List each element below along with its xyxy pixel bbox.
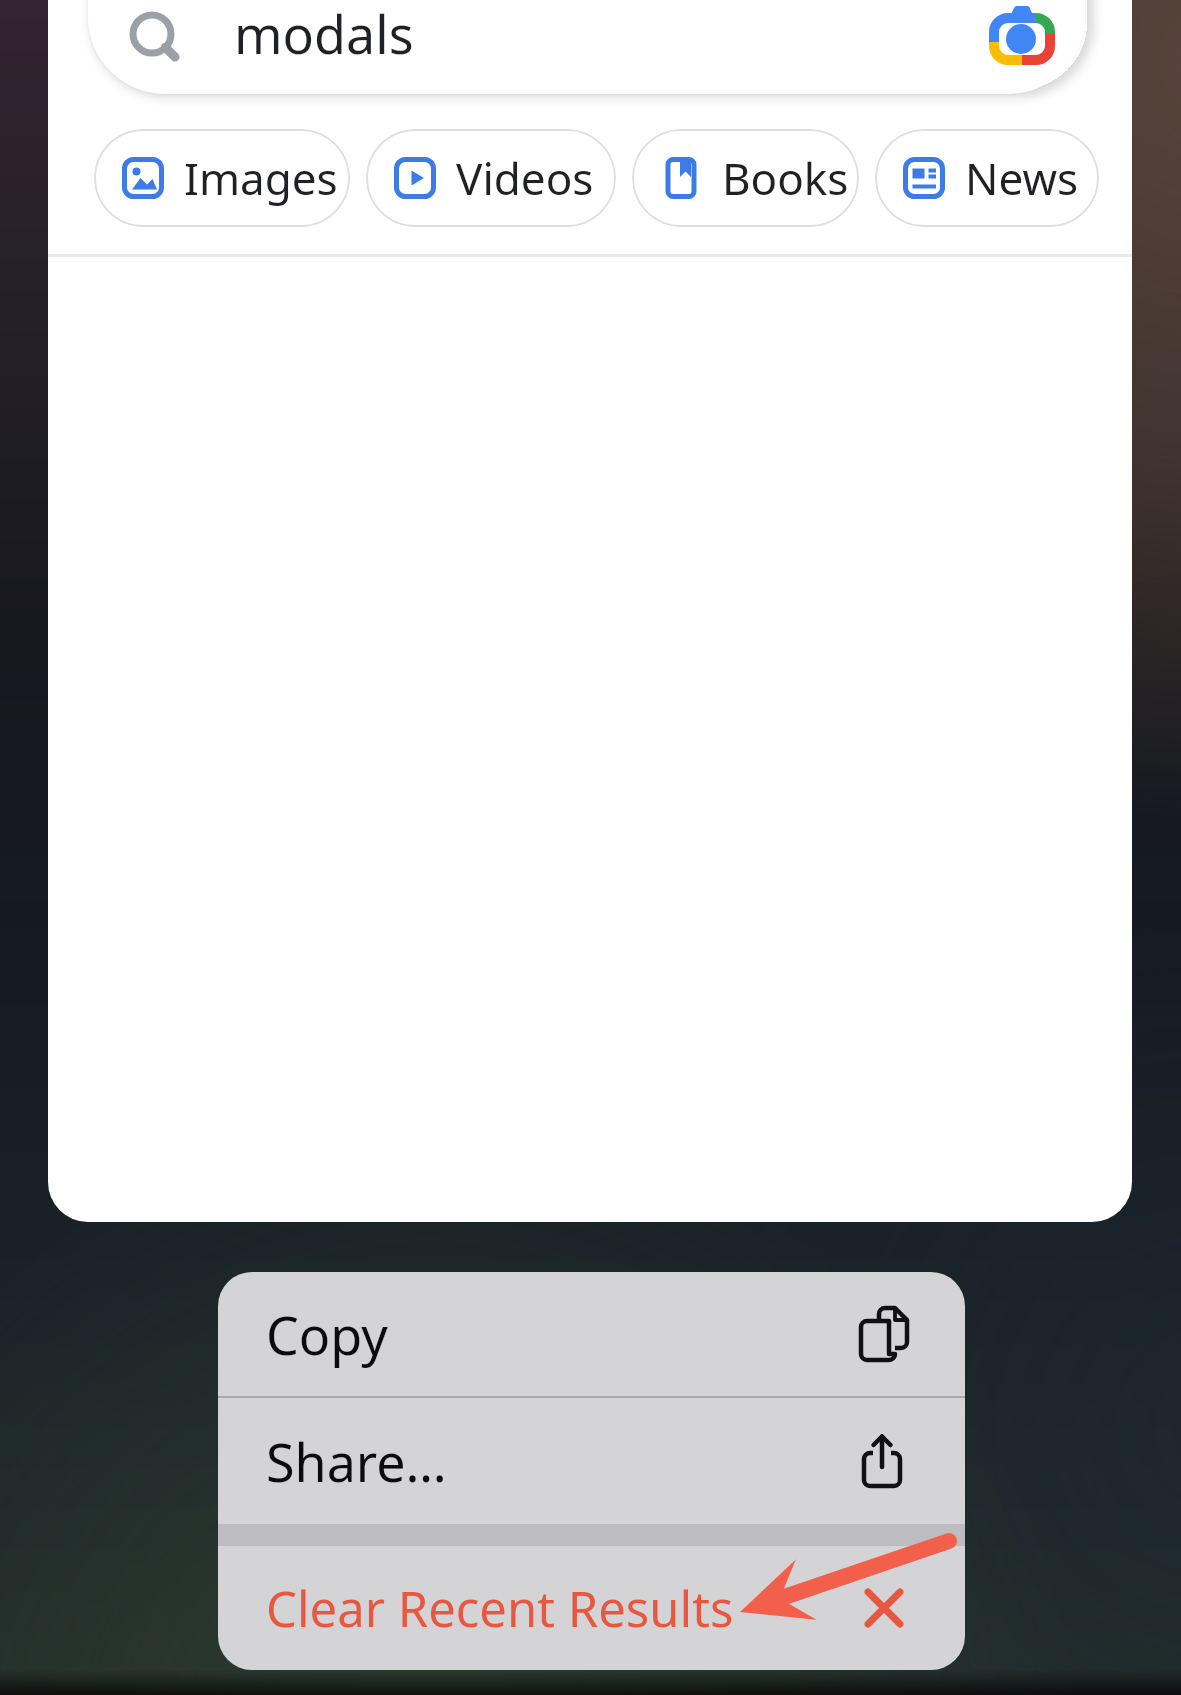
- button[interactable]: Share…: [218, 1398, 965, 1524]
- button[interactable]: Copy: [218, 1272, 965, 1396]
- button[interactable]: modals: [88, 0, 1085, 94]
- staticText: Images: [184, 148, 338, 208]
- staticText: Share…: [266, 1426, 447, 1497]
- staticText: Videos: [456, 148, 594, 208]
- button[interactable]: Images: [94, 129, 350, 227]
- staticText: Books: [722, 148, 849, 208]
- button[interactable]: Videos: [366, 129, 616, 227]
- button[interactable]: News: [875, 129, 1099, 227]
- staticText: modals: [234, 0, 414, 69]
- staticText: Copy: [266, 1299, 388, 1370]
- button[interactable]: Books: [632, 129, 859, 227]
- staticText: Clear Recent Results: [266, 1575, 734, 1642]
- staticText: News: [965, 148, 1079, 208]
- button[interactable]: Clear Recent Results: [218, 1546, 965, 1670]
